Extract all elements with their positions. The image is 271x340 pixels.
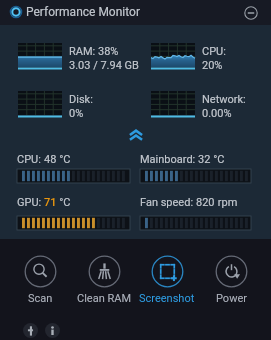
button[interactable]: About xyxy=(45,323,60,338)
staticText: 0.00% xyxy=(202,107,232,120)
staticText: Screenshot xyxy=(139,292,195,305)
staticText: Mainboard: xyxy=(140,153,198,166)
staticText: 71 xyxy=(44,196,57,209)
button[interactable]: Minimize xyxy=(242,4,260,22)
staticText: Performance Monitor xyxy=(26,5,140,19)
staticText: rpm xyxy=(215,196,238,209)
button[interactable]: Clean RAM xyxy=(73,250,135,312)
staticText: Network: xyxy=(202,93,246,106)
staticText: °C xyxy=(57,196,71,209)
staticText: 20% xyxy=(202,59,223,72)
staticText: Disk: xyxy=(69,93,93,106)
staticText: RAM: 38% xyxy=(69,45,119,58)
staticText: 820 xyxy=(196,196,215,209)
staticText: Clean RAM xyxy=(77,292,132,305)
button[interactable]: Screenshot xyxy=(136,250,198,312)
button[interactable]: Scan xyxy=(9,250,71,312)
staticText: CPU: xyxy=(202,45,226,58)
button[interactable]: Facebook xyxy=(23,323,38,338)
button[interactable]: Power xyxy=(200,250,262,312)
staticText: 3.03 / 7.94 GB xyxy=(69,59,139,72)
staticText: 48 xyxy=(44,153,57,166)
staticText: 32 xyxy=(198,153,211,166)
staticText: 0% xyxy=(69,107,84,120)
staticText: °C xyxy=(57,153,71,166)
staticText: Power xyxy=(216,292,247,305)
staticText: Scan xyxy=(28,292,53,305)
staticText: CPU: xyxy=(17,153,44,166)
staticText: Fan speed: xyxy=(140,196,196,209)
staticText: GPU: xyxy=(17,196,44,209)
button[interactable]: Expand details xyxy=(124,123,147,146)
staticText: °C xyxy=(211,153,225,166)
